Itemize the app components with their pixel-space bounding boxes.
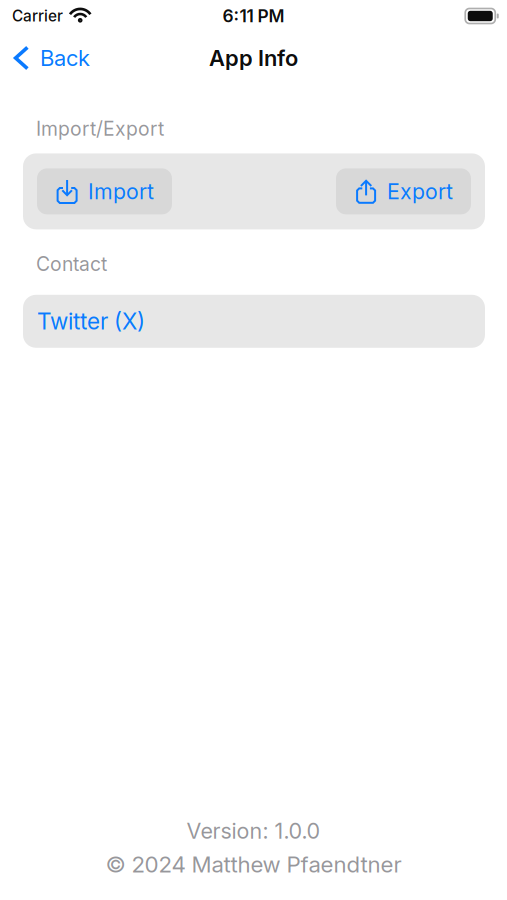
staticText: Contact — [36, 252, 107, 276]
staticText: Twitter (X) — [37, 308, 145, 335]
button[interactable]: Export — [336, 168, 471, 214]
staticText: Export — [387, 178, 453, 204]
staticText: Version: 1.0.0 — [186, 818, 320, 844]
staticText: App Info — [209, 45, 298, 71]
staticText: Import — [88, 178, 154, 204]
staticText: Back — [40, 45, 90, 71]
staticText: © 2024 Matthew Pfaendtner — [105, 851, 401, 878]
button[interactable]: Import — [37, 168, 172, 214]
staticText: Carrier — [12, 7, 63, 25]
staticText: Import/Export — [36, 117, 164, 140]
button[interactable]: Back — [0, 36, 102, 80]
button[interactable]: Twitter (X) — [23, 295, 485, 348]
staticText: 6:11 PM — [222, 5, 284, 26]
